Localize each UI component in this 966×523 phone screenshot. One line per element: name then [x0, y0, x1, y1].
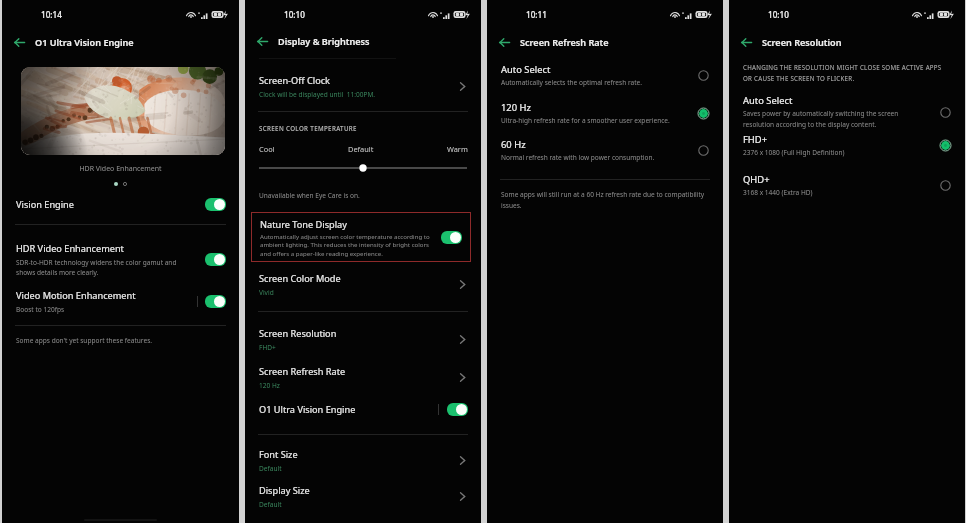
staticText: Display & Brightness: [278, 35, 370, 47]
staticText: CHANGING THE RESOLUTION MIGHT CLOSE SOME…: [743, 63, 952, 82]
staticText: 10:11: [526, 9, 547, 20]
staticText: Display Size: [259, 484, 310, 497]
button[interactable]: Toggle: [447, 403, 468, 416]
staticText: Vision Engine: [16, 198, 74, 211]
staticText: 3168 x 1440 (Extra HD): [743, 188, 931, 197]
staticText: Screen Resolution: [259, 327, 337, 340]
staticText: Auto Select: [501, 63, 551, 76]
button[interactable]: Toggle: [441, 231, 462, 244]
staticText: Some apps will still run at a 60 Hz refr…: [501, 190, 707, 210]
button[interactable]: HDR Video Enhancement: [2, 242, 239, 276]
staticText: 120 Hz: [501, 101, 531, 114]
staticText: 10:10: [284, 9, 305, 20]
button[interactable]: Font Size: [245, 448, 481, 473]
button[interactable]: Nature Tone Display: [251, 212, 471, 262]
staticText: 10:14: [41, 9, 62, 20]
button[interactable]: Select: [937, 104, 953, 120]
staticText: Unavailable when Eye Care is on.: [259, 191, 360, 200]
staticText: 10:10: [768, 9, 789, 20]
button[interactable]: Toggle: [205, 198, 226, 211]
staticText: Default: [259, 500, 282, 509]
staticText: Automatically adjust screen color temper…: [260, 232, 430, 258]
button[interactable]: Video Motion Enhancement: [2, 289, 239, 314]
button[interactable]: Back: [494, 32, 514, 52]
button[interactable]: Auto Select: [487, 63, 723, 87]
staticText: SCREEN COLOR TEMPERATURE: [259, 124, 357, 132]
staticText: Cool: [259, 144, 275, 154]
button[interactable]: Back: [9, 32, 29, 52]
button[interactable]: Back: [736, 32, 756, 52]
staticText: FHD+: [743, 133, 768, 146]
staticText: 120 Hz: [259, 381, 280, 390]
button[interactable]: Toggle: [205, 253, 226, 266]
button[interactable]: Toggle: [205, 295, 226, 308]
button[interactable]: Select: [695, 67, 711, 83]
staticText: Nature Tone Display: [260, 218, 347, 231]
staticText: 2376 x 1080 (Full High Definition): [743, 148, 931, 157]
staticText: Font Size: [259, 448, 298, 461]
staticText: FHD+: [259, 343, 276, 352]
button[interactable]: Screen Resolution: [245, 327, 481, 352]
button[interactable]: Select: [695, 142, 711, 158]
staticText: Default: [259, 464, 282, 473]
staticText: Screen-Off Clock: [259, 74, 331, 87]
button[interactable]: Selected: [695, 105, 711, 121]
staticText: SDR-to-HDR technology widens the color g…: [16, 258, 188, 276]
staticText: Screen Refresh Rate: [520, 36, 609, 48]
button[interactable]: Screen Refresh Rate: [245, 365, 481, 390]
button[interactable]: Select: [937, 177, 953, 193]
staticText: Clock will be displayed until 11:00PM.: [259, 90, 376, 99]
staticText: Default: [348, 144, 374, 154]
staticText: Warm: [447, 144, 468, 154]
staticText: Screen Refresh Rate: [259, 365, 346, 378]
staticText: 60 Hz: [501, 138, 526, 151]
staticText: Auto Select: [743, 94, 793, 107]
staticText: Saves power by automatically switching t…: [743, 109, 910, 129]
button[interactable]: Selected: [937, 137, 953, 153]
button[interactable]: Back: [252, 31, 272, 51]
staticText: HDR Video Enhancement: [16, 242, 124, 255]
button[interactable]: Vision Engine: [2, 195, 239, 213]
staticText: Screen Color Mode: [259, 272, 341, 285]
staticText: Some apps don't yet support these featur…: [16, 336, 153, 345]
button[interactable]: Screen Color Mode: [245, 272, 481, 297]
staticText: O1 Ultra Vision Engine: [35, 36, 134, 48]
button[interactable]: O1 Ultra Vision Engine: [245, 400, 481, 418]
staticText: Normal refresh rate with low power consu…: [501, 153, 689, 162]
staticText: O1 Ultra Vision Engine: [259, 403, 356, 416]
staticText: Ultra-high refresh rate for a smoother u…: [501, 116, 689, 125]
button[interactable]: Screen-Off Clock: [245, 73, 481, 99]
button[interactable]: 120 Hz: [487, 101, 723, 125]
staticText: Automatically selects the optimal refres…: [501, 78, 689, 87]
staticText: QHD+: [743, 173, 770, 186]
staticText: Boost to 120fps: [16, 305, 65, 314]
button[interactable]: 60 Hz: [487, 138, 723, 162]
staticText: HDR Video Enhancement: [2, 164, 239, 174]
button[interactable]: Auto Select: [729, 94, 965, 129]
button[interactable]: FHD+: [729, 133, 965, 157]
staticText: Video Motion Enhancement: [16, 289, 136, 302]
staticText: Vivid: [259, 288, 274, 297]
button[interactable]: Display Size: [245, 484, 481, 509]
button[interactable]: QHD+: [729, 173, 965, 197]
staticText: Screen Resolution: [762, 36, 842, 48]
